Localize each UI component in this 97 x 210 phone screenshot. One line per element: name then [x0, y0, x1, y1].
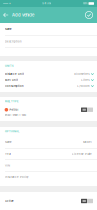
staticText: ✈	[8, 2, 11, 5]
staticText: L/100Km	[77, 84, 89, 88]
button[interactable]: Active	[0, 192, 97, 210]
staticText: Add vehicle	[12, 12, 34, 17]
staticText: Year	[5, 152, 11, 156]
staticText: Petrol	[10, 108, 19, 111]
staticText: Default Vehicle (1 Tank)	[5, 114, 27, 116]
staticText: Litres	[81, 78, 89, 82]
staticText: 9:41 AM	[42, 2, 51, 5]
staticText: Description	[5, 40, 22, 43]
button[interactable]: Year	[0, 148, 97, 159]
staticText: License Plate	[72, 152, 92, 156]
button[interactable]: Description	[0, 35, 97, 47]
staticText: Active	[5, 199, 14, 203]
button[interactable]: Name	[0, 23, 97, 35]
staticText: OPTIONAL	[5, 130, 19, 133]
button[interactable]: Save	[85, 7, 95, 23]
button[interactable]: Petrol	[0, 106, 97, 118]
button[interactable]: Distance unit	[0, 71, 97, 77]
button[interactable]: VIN	[0, 160, 97, 171]
staticText: Consumption	[5, 84, 24, 88]
staticText: UNITS	[5, 64, 14, 67]
button[interactable]: Name	[0, 136, 97, 148]
staticText: Distance unit	[5, 72, 24, 76]
staticText: VIN	[5, 164, 10, 167]
staticText: Name	[5, 140, 12, 144]
staticText: •••••	[3, 2, 8, 5]
staticText: Fuel unit	[5, 78, 18, 82]
button[interactable]: Insurance Policy	[0, 171, 97, 182]
button[interactable]: Back	[1, 7, 12, 23]
staticText: Model	[83, 140, 92, 144]
staticText: FUEL TYPE	[5, 100, 18, 103]
staticText: 100%	[82, 2, 87, 5]
button[interactable]: Fuel unit	[0, 77, 97, 83]
staticText: Name	[5, 27, 12, 31]
staticText: Kilometres	[74, 72, 89, 76]
staticText: Insurance Policy	[5, 175, 28, 179]
button[interactable]: Consumption	[0, 83, 97, 89]
